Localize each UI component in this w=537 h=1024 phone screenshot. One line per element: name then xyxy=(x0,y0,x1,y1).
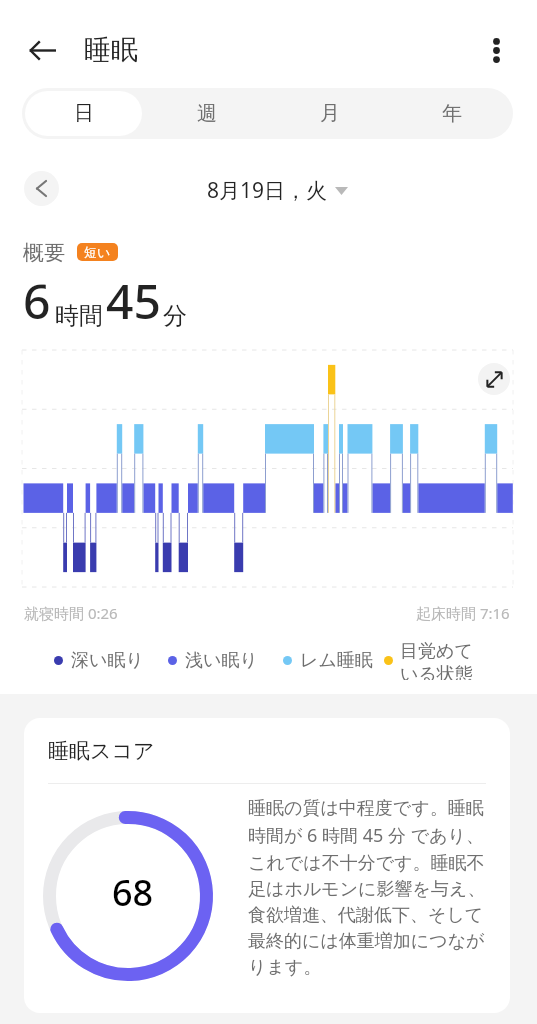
button[interactable]: 睡眠スコア xyxy=(24,718,510,1013)
button[interactable]: Previous day xyxy=(24,171,59,206)
staticText: 8月19日，火 xyxy=(207,176,328,205)
staticText: 短い xyxy=(84,244,111,260)
staticText: 68 xyxy=(112,868,154,917)
staticText: 睡眠の質は中程度です。睡眠時間が 6 時間 45 分 であり、これでは不十分です… xyxy=(248,797,486,978)
staticText: 月 xyxy=(320,101,340,126)
button[interactable]: 週 xyxy=(148,91,265,136)
button[interactable]: 日 xyxy=(25,91,142,136)
staticText: 深い眠り xyxy=(71,649,144,672)
button[interactable]: 8月19日，火 xyxy=(207,176,348,205)
button[interactable]: Back xyxy=(20,30,64,70)
staticText: いる状態 xyxy=(400,663,473,680)
staticText: 概要 xyxy=(23,240,65,266)
staticText: 年 xyxy=(442,101,462,126)
button[interactable]: 月 xyxy=(271,91,388,136)
staticText: 浅い眠り xyxy=(185,649,258,672)
button[interactable]: 年 xyxy=(394,91,510,136)
staticText: レム睡眠 xyxy=(300,649,373,672)
staticText: 睡眠スコア xyxy=(48,738,155,764)
button[interactable]: Expand chart xyxy=(478,363,510,395)
staticText: 週 xyxy=(197,101,217,126)
staticText: 日 xyxy=(74,101,94,126)
staticText: 時間 xyxy=(55,301,103,331)
staticText: 分 xyxy=(163,301,187,331)
staticText: 45 xyxy=(106,268,161,333)
staticText: 6 xyxy=(23,268,51,333)
staticText: 目覚めて xyxy=(400,640,473,663)
staticText: 睡眠 xyxy=(84,33,138,67)
staticText: 起床時間 7:16 xyxy=(416,603,510,623)
button[interactable]: More options xyxy=(477,30,515,70)
staticText: 就寝時間 0:26 xyxy=(24,603,118,623)
